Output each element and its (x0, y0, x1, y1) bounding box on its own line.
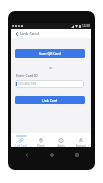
button[interactable]: Recent apps (73, 151, 80, 158)
button[interactable]: Back (13, 29, 21, 38)
button[interactable]: Link Card (11, 133, 31, 147)
staticText: Scan QR Card (39, 51, 61, 56)
button[interactable]: Account (71, 133, 91, 147)
button[interactable]: 123 456 789 (15, 80, 84, 88)
staticText: Link Card (20, 31, 39, 37)
button[interactable]: Places (31, 133, 51, 147)
button[interactable]: Home (48, 151, 55, 158)
staticText: Places (37, 144, 45, 147)
button[interactable]: Scan QR Card (15, 49, 85, 58)
button[interactable]: Alerts (51, 133, 71, 147)
staticText: Enter Card ID (16, 73, 38, 78)
staticText: Account (76, 144, 86, 147)
staticText: Alerts (57, 144, 65, 147)
button[interactable]: Back (23, 151, 30, 158)
staticText: or (49, 65, 53, 70)
button[interactable]: Link Card (15, 96, 85, 104)
staticText: Link Card (42, 98, 58, 103)
staticText: 123 456 789 (18, 82, 37, 86)
staticText: 12:30 (82, 24, 90, 28)
staticText: Link Card (15, 144, 27, 147)
